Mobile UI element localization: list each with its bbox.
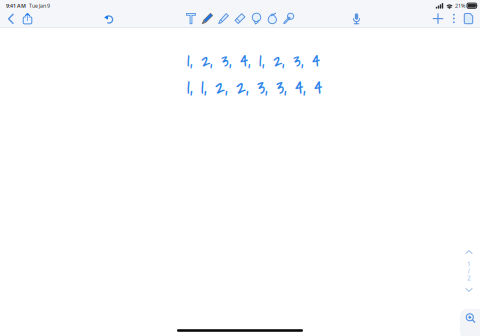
staticText: 1, 2, 3, 4, 1, 2, 3, 4 xyxy=(187,47,320,74)
staticText: 21% xyxy=(455,2,465,9)
button[interactable]: Record audio xyxy=(347,11,365,26)
button[interactable]: Undo xyxy=(99,11,117,26)
staticText: 2 xyxy=(467,274,471,282)
button[interactable]: Note browser xyxy=(459,11,477,26)
button[interactable]: Eraser xyxy=(232,11,247,26)
button[interactable]: Lasso xyxy=(249,11,264,26)
staticText: 9:41 AM xyxy=(6,2,26,9)
staticText: / xyxy=(467,267,470,275)
staticText: 1, 1, 2, 2, 3, 3, 4, 4 xyxy=(187,73,322,102)
button[interactable]: Text tool xyxy=(183,11,198,26)
staticText: Tue Jan 9 xyxy=(29,2,50,9)
button[interactable]: Smudge xyxy=(265,11,280,26)
button[interactable]: Next page xyxy=(462,285,476,295)
staticText: 1 xyxy=(467,260,471,268)
button[interactable]: Previous page xyxy=(462,247,476,257)
button[interactable]: Color picker xyxy=(281,11,296,26)
button[interactable]: Add xyxy=(429,11,447,26)
button[interactable]: Share xyxy=(18,11,36,26)
button[interactable]: Back xyxy=(2,11,20,26)
button[interactable]: More options xyxy=(447,11,461,26)
button[interactable]: Highlighter xyxy=(216,11,231,26)
button[interactable]: Pen xyxy=(200,11,215,26)
